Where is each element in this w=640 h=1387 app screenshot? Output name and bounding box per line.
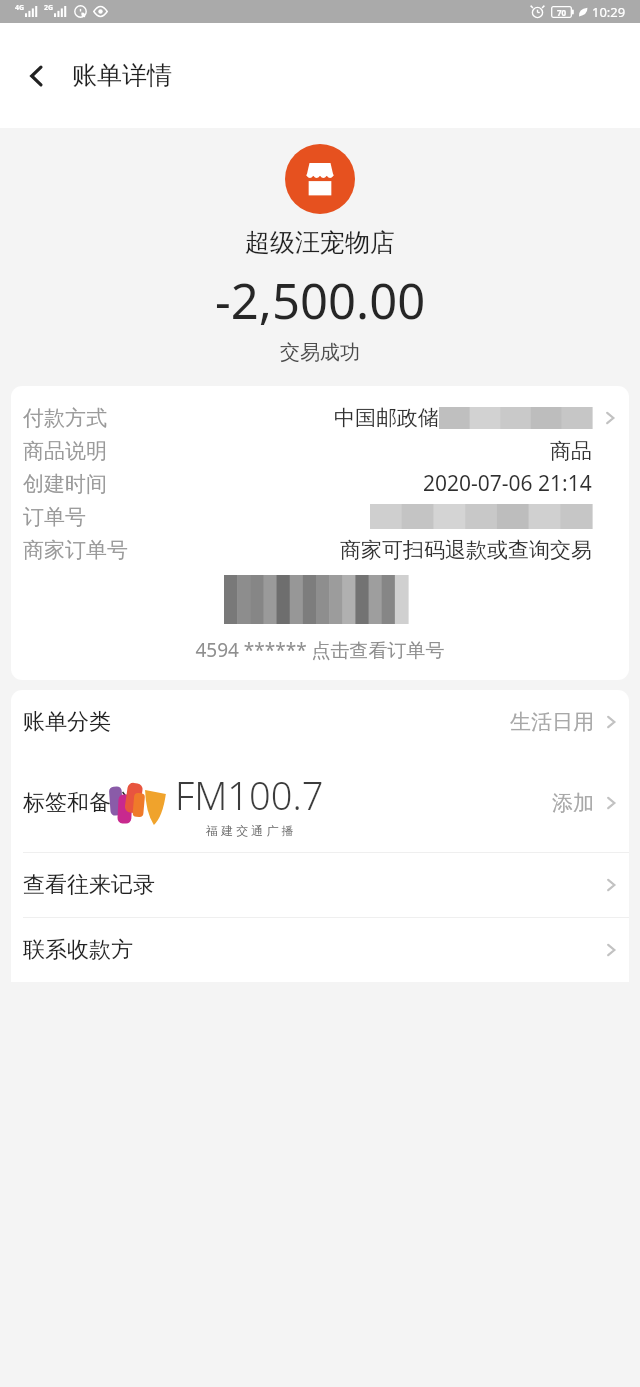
staticText: 2020-07-06 21:14 xyxy=(423,469,592,498)
staticText: 添加 xyxy=(552,790,594,816)
button[interactable]: 付款方式 xyxy=(11,401,629,434)
staticText: 商品说明 xyxy=(23,438,107,464)
staticText: 查看往来记录 xyxy=(23,871,155,899)
button[interactable]: 联系收款方 xyxy=(11,918,629,982)
staticText: 2G xyxy=(44,3,54,13)
staticText: 商家可扫码退款或查询交易 xyxy=(340,537,592,563)
staticText: 付款方式 xyxy=(23,405,107,431)
staticText: 交易成功 xyxy=(280,340,360,365)
staticText: 10:29 xyxy=(592,3,626,21)
staticText: 账单详情 xyxy=(72,60,172,91)
staticText: 中国邮政储 xyxy=(334,405,439,431)
staticText: 账单分类 xyxy=(23,708,111,736)
staticText: 商品 xyxy=(550,438,592,464)
button[interactable]: 4594 ****** 点击查看订单号 xyxy=(195,637,445,663)
staticText: 联系收款方 xyxy=(23,936,133,964)
button[interactable]: 查看往来记录 xyxy=(11,853,629,917)
staticText: 订单号 xyxy=(23,504,86,530)
staticText: 福 建 交 通 广 播 xyxy=(206,822,294,838)
staticText: -2,500.00 xyxy=(215,267,426,334)
staticText: 生活日用 xyxy=(510,709,594,735)
button[interactable]: 商家订单号 xyxy=(11,533,629,566)
button[interactable]: 标签和备注 xyxy=(11,754,629,852)
staticText: 70 xyxy=(557,7,567,18)
staticText: 超级汪宠物店 xyxy=(245,227,395,258)
button[interactable]: 账单分类 xyxy=(11,690,629,754)
button[interactable]: 订单号 xyxy=(11,500,629,533)
staticText: 商家订单号 xyxy=(23,537,128,563)
staticText: 标签和备注 xyxy=(23,789,133,817)
staticText: 4G xyxy=(15,3,25,13)
staticText: FM100.7 xyxy=(175,769,324,821)
staticText: 创建时间 xyxy=(23,471,107,497)
button[interactable]: 商品说明 xyxy=(11,434,629,467)
button[interactable]: Back xyxy=(14,53,60,99)
button[interactable]: 创建时间 xyxy=(11,467,629,500)
